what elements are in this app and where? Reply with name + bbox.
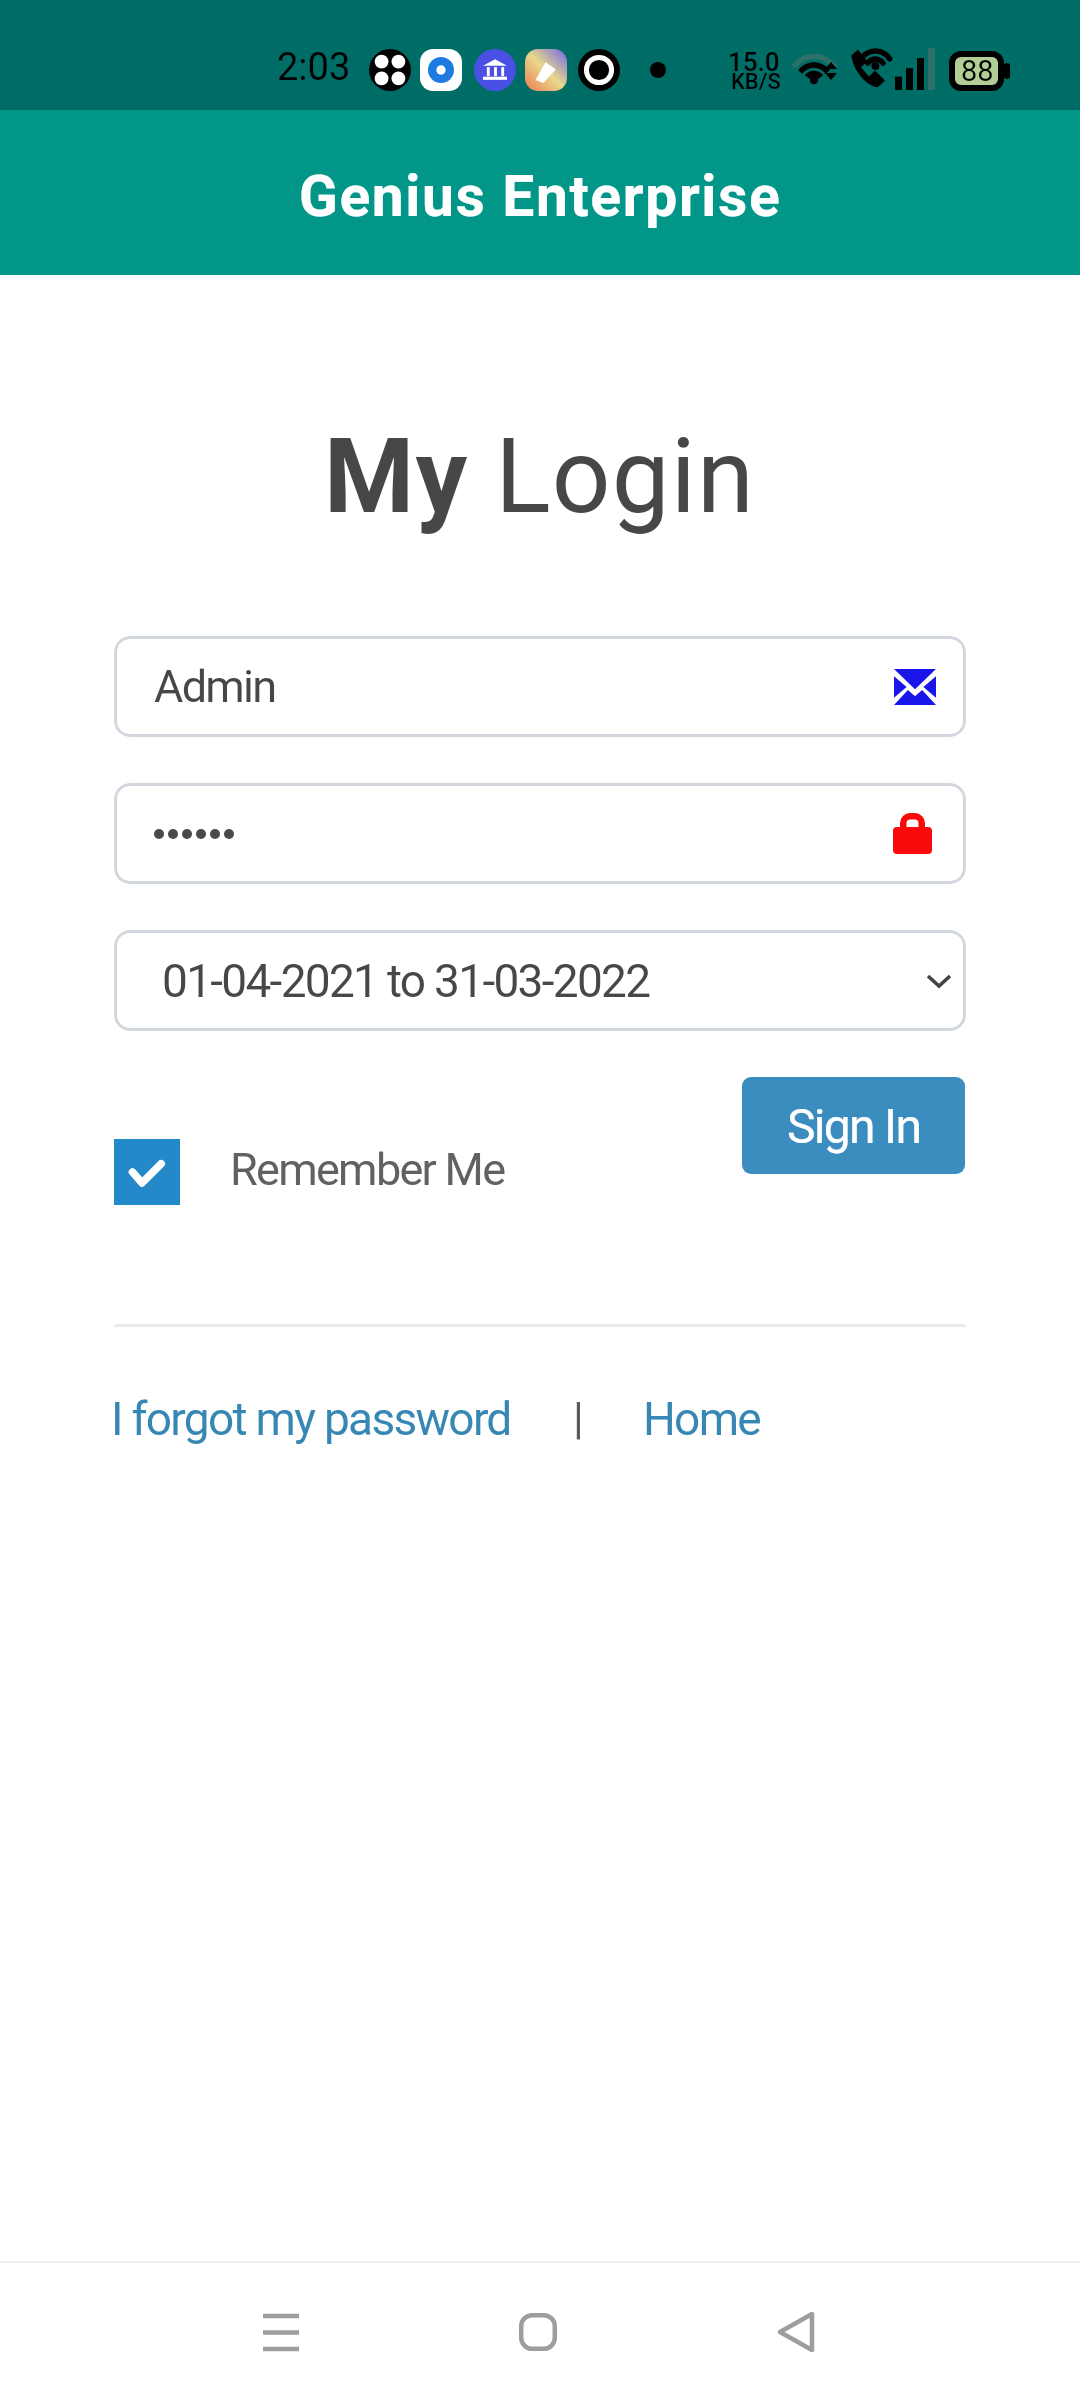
staticText: |	[573, 1393, 583, 1445]
staticText: 15.0	[728, 47, 780, 77]
other: Password	[893, 813, 932, 854]
button[interactable]: Admin	[114, 636, 966, 737]
other: Email	[894, 669, 936, 705]
button[interactable]: Remember Me	[114, 1139, 505, 1205]
button[interactable]: 01-04-2021 to 31-03-2022	[114, 930, 966, 1031]
staticText: Remember Me	[230, 1143, 505, 1196]
staticText: Admin	[154, 660, 276, 713]
staticText: Genius Enterprise	[299, 163, 782, 230]
staticText: 88	[961, 54, 994, 88]
button[interactable]: Home	[643, 1392, 760, 1446]
button[interactable]: I forgot my password	[111, 1392, 511, 1446]
staticText: 01-04-2021 to 31-03-2022	[162, 954, 650, 1008]
staticText: 2:03	[277, 45, 351, 90]
button[interactable]: Recent apps	[238, 2289, 324, 2375]
button[interactable]: Home	[495, 2289, 581, 2375]
button[interactable]: Password	[114, 783, 966, 884]
staticText: My Login	[324, 416, 756, 537]
other: Expand	[926, 974, 952, 988]
staticText: I forgot my password	[111, 1392, 511, 1446]
button[interactable]: Sign In	[742, 1077, 965, 1174]
button[interactable]: Back	[753, 2289, 839, 2375]
staticText: Sign In	[787, 1098, 921, 1154]
staticText: Home	[643, 1392, 760, 1446]
staticText: KB/S	[731, 69, 781, 95]
